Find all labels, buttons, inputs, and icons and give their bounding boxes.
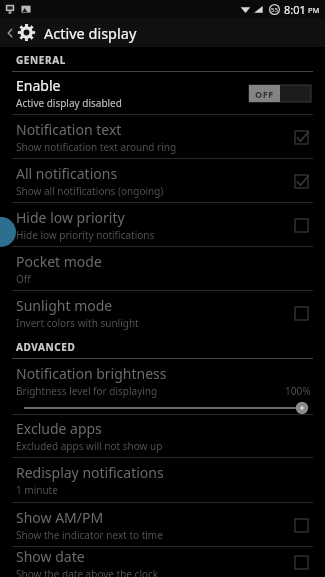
staticText: Brightness level for displaying [16, 384, 158, 398]
staticText: Redisplay notifications [16, 463, 164, 482]
button[interactable]: Unchecked [291, 552, 311, 572]
staticText: Show AM/PM [16, 508, 104, 527]
button[interactable]: Enable [0, 72, 325, 114]
button[interactable]: Exclude apps [0, 415, 325, 457]
button[interactable]: Unchecked [291, 215, 311, 235]
staticText: 100% [285, 384, 311, 398]
staticText: Invert colors with sunlight [16, 316, 139, 330]
button[interactable]: Show AM/PM [0, 503, 325, 546]
staticText: Hide low priority [16, 208, 125, 227]
button[interactable]: All notifications [0, 159, 325, 202]
staticText: Notification text [16, 120, 122, 139]
staticText: Show notification text around ring [16, 140, 177, 154]
button[interactable]: Unchecked [291, 303, 311, 323]
button[interactable]: Notification brightness [0, 359, 325, 414]
button[interactable]: Sunlight mode [0, 291, 325, 334]
staticText: Sunlight mode [16, 296, 113, 315]
staticText: Hide low priority notifications [16, 228, 155, 242]
staticText: Show the date above the clock [16, 567, 159, 577]
staticText: ADVANCED [16, 340, 76, 354]
button[interactable]: Pocket mode [0, 247, 325, 290]
button[interactable]: Navigate up [0, 18, 325, 47]
staticText: Notification brightness [16, 364, 167, 383]
staticText: Off [16, 272, 31, 286]
staticText: PM [308, 5, 320, 15]
button[interactable]: Checked [291, 171, 311, 191]
staticText: Active display [44, 23, 137, 43]
button[interactable]: Unchecked [291, 515, 311, 535]
staticText: Active display disabled [16, 96, 122, 110]
staticText: 8:01 [284, 2, 306, 17]
staticText: 55 [271, 6, 278, 14]
staticText: Pocket mode [16, 252, 102, 271]
staticText: OFF [255, 88, 274, 100]
button[interactable]: Brightness slider [24, 402, 311, 414]
staticText: Exclude apps [16, 419, 102, 438]
button[interactable]: Enable toggle, off [249, 85, 311, 102]
button[interactable]: Show date [0, 547, 325, 577]
staticText: Show date [16, 547, 85, 566]
button[interactable]: Redisplay notifications [0, 458, 325, 502]
staticText: Show the indicator next to time [16, 528, 163, 542]
staticText: Enable [16, 76, 61, 95]
staticText: Show all notifications (ongoing) [16, 184, 164, 198]
button[interactable]: Checked [291, 127, 311, 147]
staticText: GENERAL [16, 53, 66, 67]
staticText: 1 minute [16, 483, 58, 497]
button[interactable]: Hide low priority [0, 203, 325, 246]
staticText: Excluded apps will not show up [16, 439, 163, 453]
other: Navigate up [6, 25, 14, 41]
staticText: All notifications [16, 164, 118, 183]
button[interactable]: Notification text [0, 115, 325, 158]
